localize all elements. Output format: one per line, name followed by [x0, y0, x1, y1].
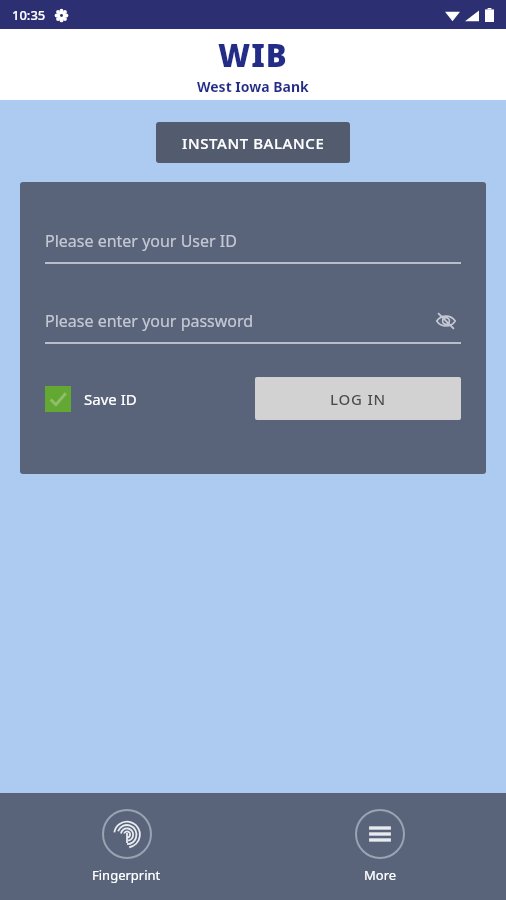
staticText: Fingerprint — [92, 866, 161, 884]
button[interactable]: Show password — [431, 308, 461, 334]
staticText: 10:35 — [12, 6, 46, 24]
staticText: Save ID — [84, 389, 137, 409]
button[interactable]: More — [337, 805, 423, 888]
button[interactable]: INSTANT BALANCE — [156, 122, 350, 163]
button[interactable]: LOG IN — [255, 377, 461, 420]
staticText: More — [364, 866, 397, 884]
staticText: LOG IN — [330, 389, 387, 409]
button[interactable]: Save ID — [45, 386, 137, 412]
staticText: West Iowa Bank — [197, 77, 309, 96]
staticText: Please enter your User ID — [45, 230, 237, 252]
button[interactable]: Fingerprint — [74, 805, 179, 888]
staticText: WIB — [218, 34, 288, 76]
staticText: Please enter your password — [45, 310, 254, 332]
staticText: INSTANT BALANCE — [182, 133, 325, 153]
